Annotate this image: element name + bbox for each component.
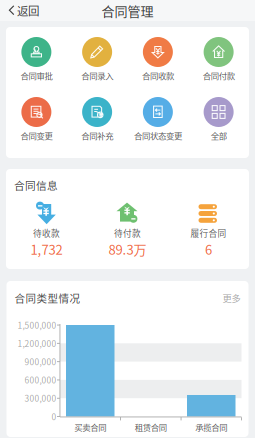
button[interactable]: 合同付款 [188,37,249,84]
staticText: 900,000 [24,355,56,368]
staticText: 合同录入 [81,69,113,82]
button[interactable]: 合同收款 [127,37,188,84]
staticText: 待收款 [33,227,60,239]
staticText: 全部 [211,129,227,142]
staticText: 600,000 [24,374,56,386]
staticText: 合同收款 [142,69,174,82]
staticText: 履行合同 [190,227,226,239]
staticText: 0 [51,410,56,423]
staticText: 1,500,000 [17,319,56,331]
button[interactable]: 合同状态变更 [127,97,188,144]
staticText: 合同付款 [203,69,235,82]
staticText: 6 [205,239,212,258]
staticText: 合同补充 [81,129,113,142]
button[interactable]: 合同审批 [6,37,67,84]
staticText: 租赁合同 [135,421,167,433]
button[interactable]: 返回 [0,0,47,23]
staticText: 300,000 [24,392,56,404]
staticText: 1,200,000 [17,337,56,349]
staticText: 合同管理 [101,1,153,20]
staticText: 合同状态变更 [134,129,182,142]
staticText: 合同信息 [14,177,58,193]
button[interactable]: 合同变更 [6,97,67,144]
staticText: 更多 [222,291,240,305]
staticText: 1,732 [30,239,62,258]
staticText: 待付款 [114,227,141,239]
staticText: 合同类型情况 [14,290,80,306]
button[interactable]: 全部 [188,97,249,144]
button[interactable]: 合同录入 [67,37,128,84]
staticText: 合同审批 [20,69,52,82]
staticText: 返回 [17,2,39,19]
staticText: 89.3万 [108,239,146,258]
staticText: 合同变更 [20,129,52,142]
staticText: 买卖合同 [74,421,106,433]
staticText: 承揽合同 [195,421,227,433]
button[interactable]: 更多 [222,291,240,305]
button[interactable]: 合同补充 [67,97,128,144]
